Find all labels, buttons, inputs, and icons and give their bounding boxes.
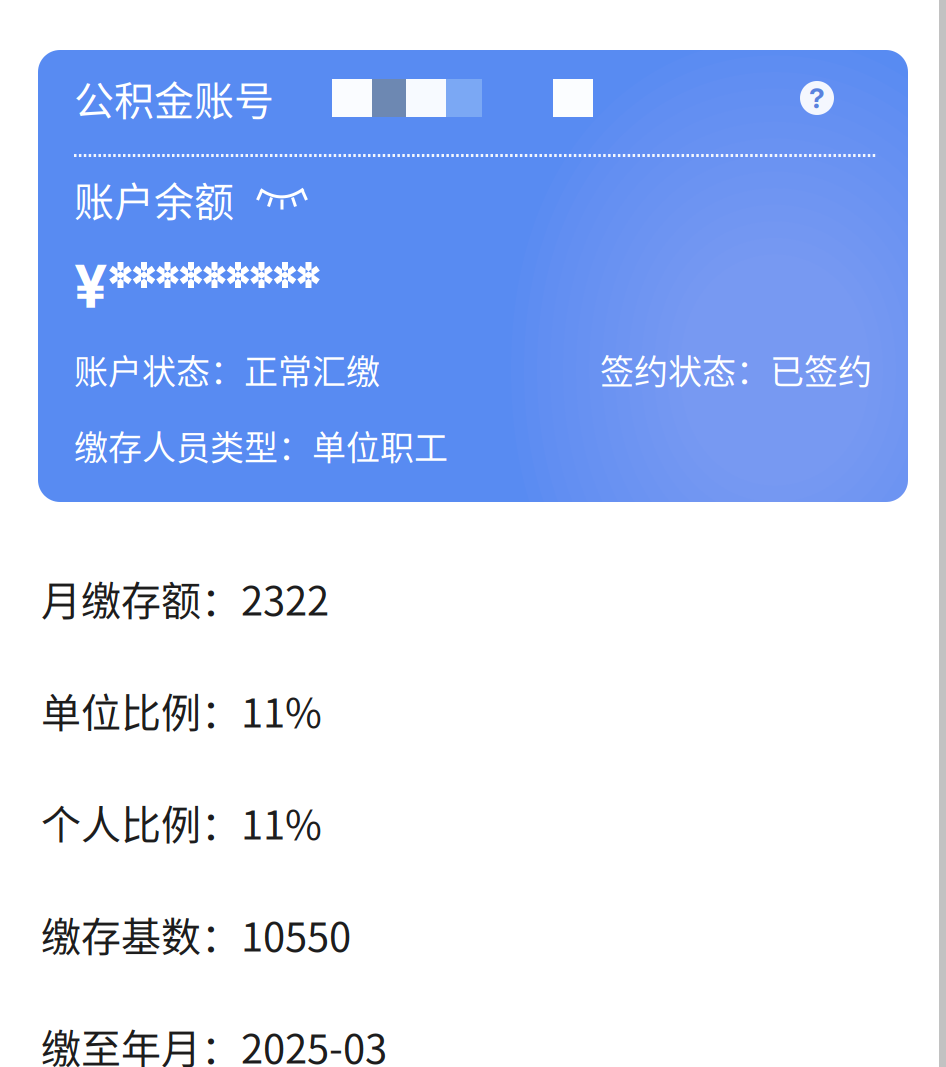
staticText: 账户状态：正常汇缴 [74,345,380,394]
staticText: 缴存基数：10550 [41,905,351,963]
staticText: 缴至年月：2025-03 [41,1017,387,1067]
staticText: 账户余额 [74,170,234,228]
staticText: 月缴存额：2322 [41,569,329,627]
button[interactable]: 月缴存额：2322 [41,542,921,654]
staticText: ¥ [74,251,107,322]
staticText: 签约状态：已签约 [600,345,872,394]
button[interactable]: 缴至年月：2025-03 [41,990,921,1067]
button[interactable]: 帮助 [800,81,834,115]
button[interactable]: 个人比例：11% [41,766,921,878]
button[interactable]: 显示余额 [257,187,307,210]
staticText: 单位比例：11% [41,681,322,739]
staticText: 公积金账号 [74,69,274,127]
button[interactable]: 缴存基数：10550 [41,878,921,990]
staticText: ? [809,81,825,115]
staticText: 缴存人员类型：单位职工 [74,421,448,470]
staticText: 个人比例：11% [41,793,322,851]
button[interactable]: 单位比例：11% [41,654,921,766]
